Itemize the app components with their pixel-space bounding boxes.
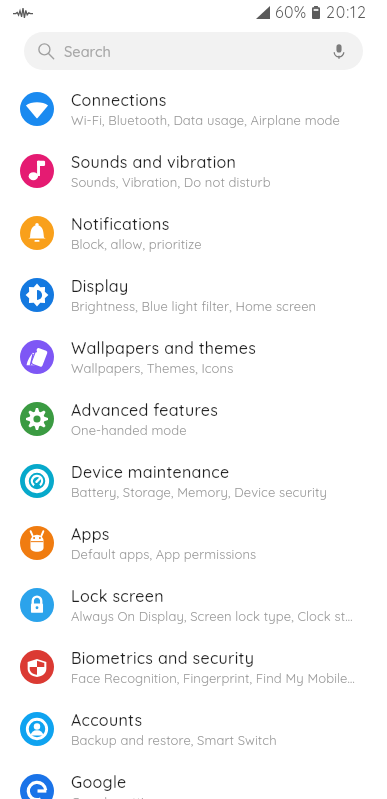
staticText: Wi-Fi, Bluetooth, Data usage, Airplane m… <box>71 112 341 128</box>
staticText: Apps <box>71 524 110 544</box>
staticText: Accounts <box>71 710 143 730</box>
button[interactable]: Sounds and vibration <box>0 140 387 202</box>
staticText: Google <box>71 772 127 792</box>
button[interactable]: Apps <box>0 512 387 574</box>
staticText: Advanced features <box>71 400 219 420</box>
button[interactable]: Lock screen <box>0 574 387 636</box>
staticText: Google settings <box>71 794 166 799</box>
staticText: Block, allow, prioritize <box>71 236 202 252</box>
button[interactable]: Advanced features <box>0 388 387 450</box>
staticText: Notifications <box>71 214 170 234</box>
staticText: Sounds and vibration <box>71 152 237 172</box>
staticText: Device maintenance <box>71 462 230 482</box>
staticText: Face Recognition, Fingerprint, Find My M… <box>71 670 355 686</box>
button[interactable]: Accounts <box>0 698 387 760</box>
staticText: Connections <box>71 90 167 110</box>
button[interactable]: Biometrics and security <box>0 636 387 698</box>
button[interactable]: Google <box>0 760 387 799</box>
button[interactable]: Search <box>24 32 363 70</box>
staticText: Biometrics and security <box>71 648 255 668</box>
button[interactable]: Display <box>0 264 387 326</box>
staticText: One-handed mode <box>71 422 187 438</box>
staticText: Default apps, App permissions <box>71 546 257 562</box>
staticText: Brightness, Blue light filter, Home scre… <box>71 298 317 314</box>
button[interactable]: Connections <box>0 78 387 140</box>
button[interactable]: Wallpapers and themes <box>0 326 387 388</box>
staticText: Sounds, Vibration, Do not disturb <box>71 174 271 190</box>
staticText: 60% <box>275 2 307 22</box>
button[interactable]: Device maintenance <box>0 450 387 512</box>
staticText: Wallpapers and themes <box>71 338 257 358</box>
staticText: Lock screen <box>71 586 164 606</box>
staticText: Display <box>71 276 129 296</box>
staticText: Search <box>64 42 111 60</box>
staticText: Battery, Storage, Memory, Device securit… <box>71 484 327 500</box>
staticText: Backup and restore, Smart Switch <box>71 732 277 748</box>
staticText: Always On Display, Screen lock type, Clo… <box>71 608 353 624</box>
staticText: 20:12 <box>326 2 367 22</box>
staticText: Wallpapers, Themes, Icons <box>71 360 234 376</box>
other: Voice search <box>330 42 348 60</box>
button[interactable]: Notifications <box>0 202 387 264</box>
